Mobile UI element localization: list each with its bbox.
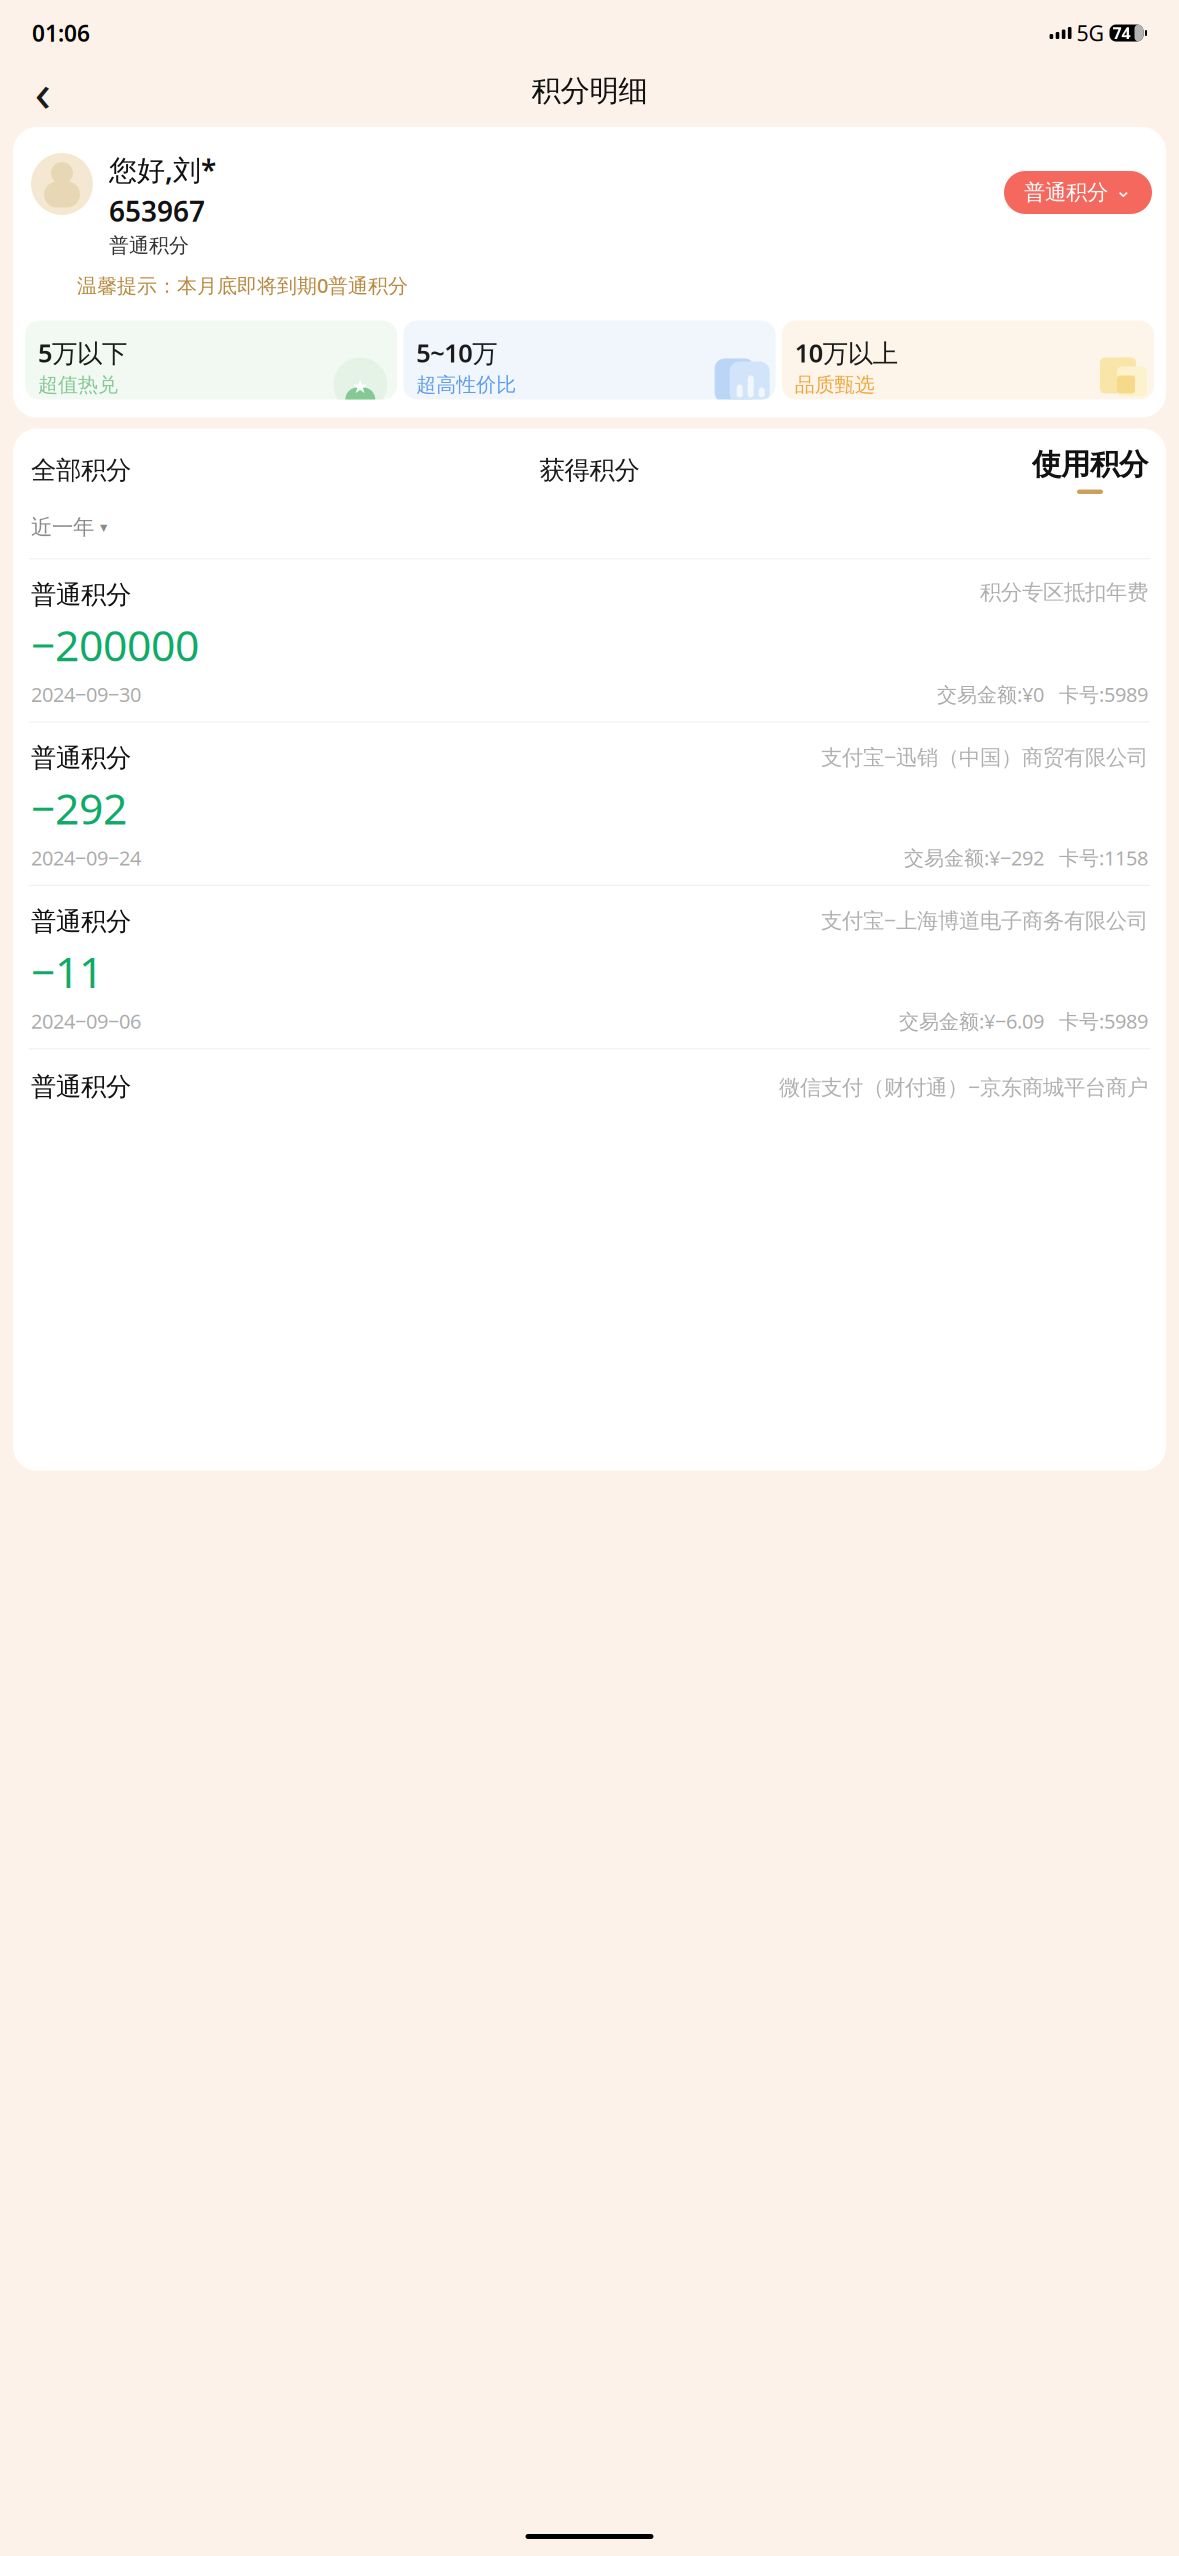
staticText: 普通积分 [1024, 179, 1108, 206]
staticText: −11 [31, 943, 103, 1000]
button[interactable]: Back [19, 67, 67, 115]
staticText: 交易金额:¥−292 卡号:1158 [904, 844, 1148, 871]
staticText: ‹ [34, 56, 51, 126]
staticText: 近一年 [31, 514, 94, 540]
staticText: 交易金额:¥0 卡号:5989 [937, 681, 1148, 708]
staticText: 10万以上 [795, 336, 898, 369]
staticText: 2024−09−06 [31, 1008, 141, 1034]
button[interactable]: 获得积分 [403, 455, 776, 486]
staticText: 支付宝−迅销（中国）商贸有限公司 [821, 743, 1148, 771]
staticText: 积分明细 [531, 73, 647, 109]
button[interactable]: 普通积分 [25, 559, 1154, 707]
staticText: ⌄ [1115, 179, 1132, 201]
staticText: ▾ [100, 519, 107, 535]
staticText: −292 [31, 780, 127, 836]
staticText: 温馨提示：本月底即将到期0普通积分 [77, 272, 408, 298]
button[interactable]: 普通积分 [25, 886, 1154, 1034]
staticText: 2024−09−30 [31, 681, 141, 708]
button[interactable]: 10万以上 [782, 320, 1154, 399]
staticText: 普通积分 [31, 906, 131, 937]
button[interactable]: 5~10万 [403, 320, 776, 399]
staticText: 超值热兑 [38, 372, 118, 397]
staticText: 01:06 [32, 18, 90, 48]
staticText: 5G [1076, 19, 1104, 47]
button[interactable]: 近一年 [31, 514, 107, 540]
staticText: ★ [352, 376, 369, 397]
staticText: 超高性价比 [416, 372, 516, 397]
staticText: 支付宝−上海博道电子商务有限公司 [821, 906, 1148, 934]
staticText: 74 [1112, 22, 1130, 44]
staticText: 交易金额:¥−6.09 卡号:5989 [899, 1008, 1148, 1034]
staticText: 品质甄选 [795, 372, 875, 397]
staticText: 普通积分 [31, 579, 131, 610]
button[interactable]: 普通积分 [1004, 171, 1152, 214]
staticText: 普通积分 [31, 743, 131, 774]
button[interactable]: 普通积分 [25, 723, 1154, 871]
staticText: −200000 [31, 616, 199, 673]
staticText: 2024−09−24 [31, 844, 141, 871]
staticText: 全部积分 [31, 455, 131, 486]
staticText: 使用积分 [1032, 446, 1148, 482]
staticText: 获得积分 [539, 455, 639, 486]
button[interactable]: 全部积分 [31, 455, 403, 486]
staticText: 积分专区抵扣年费 [980, 579, 1148, 605]
staticText: 普通积分 [109, 233, 189, 258]
staticText: 您好,刘* [109, 151, 216, 188]
button[interactable]: 使用积分 [776, 446, 1148, 494]
staticText: 5万以下 [38, 336, 127, 369]
staticText: 5~10万 [416, 336, 497, 369]
staticText: 普通积分 [31, 1071, 131, 1102]
staticText: 微信支付（财付通）−京东商城平台商户 [779, 1073, 1148, 1101]
button[interactable]: ★ [25, 320, 397, 399]
staticText: 653967 [109, 192, 205, 229]
